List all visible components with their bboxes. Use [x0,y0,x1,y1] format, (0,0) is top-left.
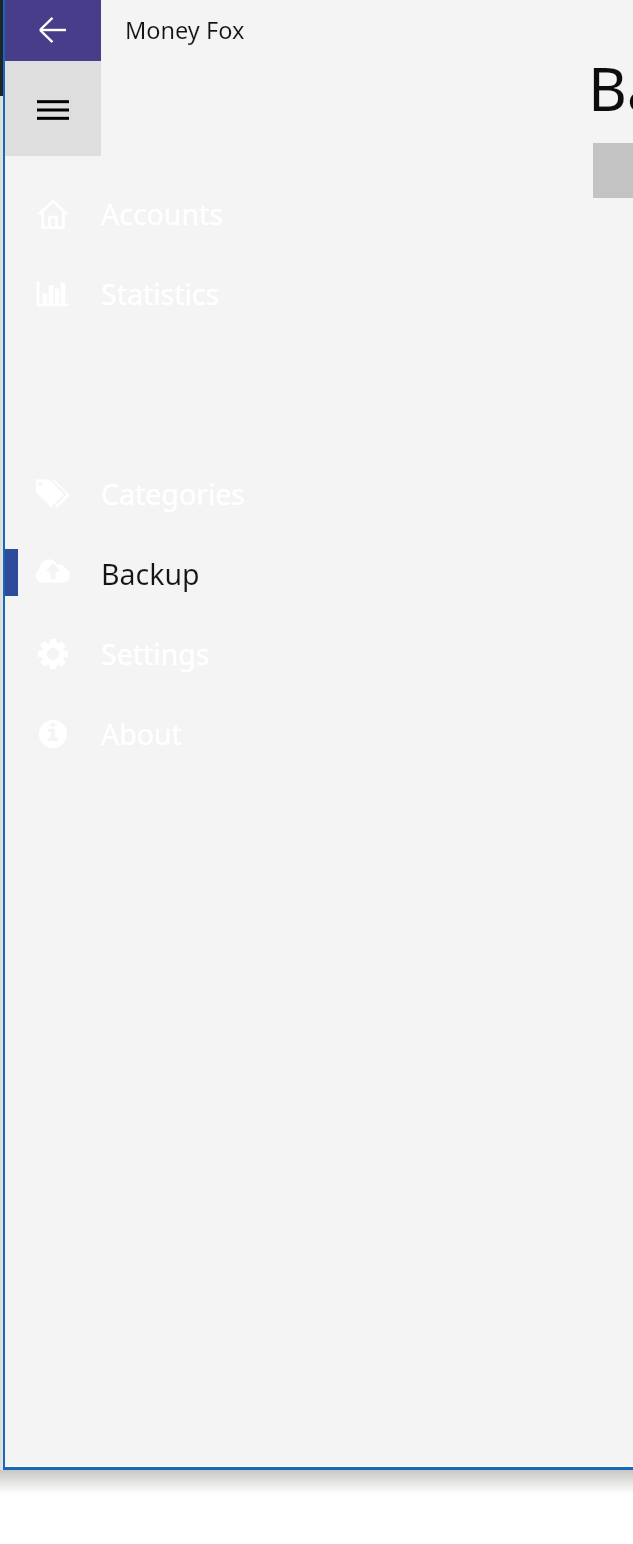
button[interactable]: Menu [5,61,101,156]
button[interactable]: Backup [5,546,435,602]
button[interactable]: Back [5,0,101,61]
staticText: Statistics [101,275,220,314]
staticText: Categories [101,475,245,514]
staticText: Backup [588,47,633,129]
staticText: About [101,715,182,754]
staticText: Settings [101,635,210,674]
staticText: Backup [101,555,200,594]
staticText: Money Fox [125,14,245,46]
staticText: Accounts [101,195,223,234]
